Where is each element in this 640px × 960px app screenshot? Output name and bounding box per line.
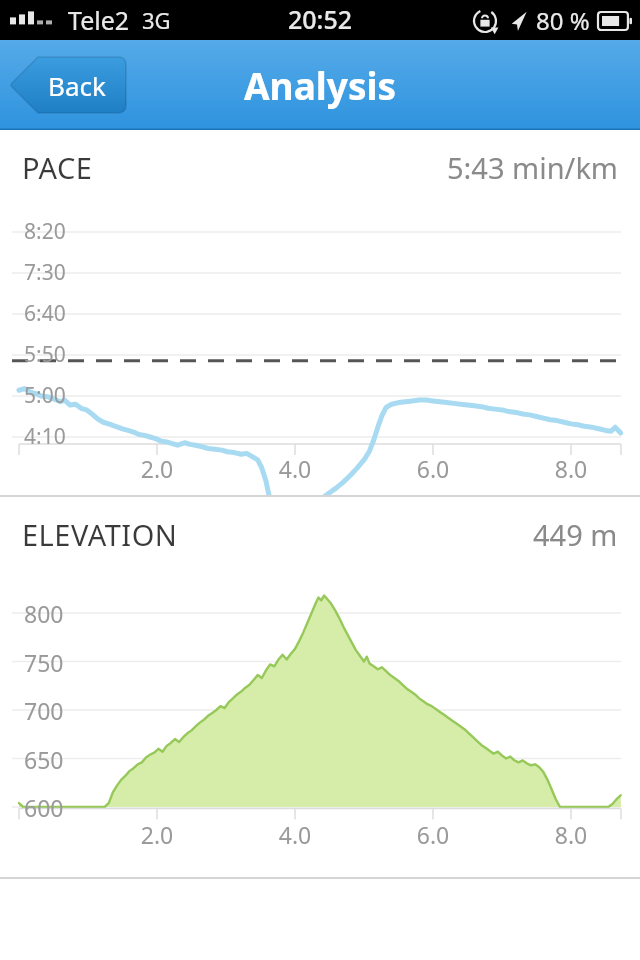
staticText: 3G	[142, 5, 171, 35]
staticText: 20:52	[288, 2, 353, 36]
staticText: ELEVATION	[22, 515, 178, 554]
staticText: 750	[24, 647, 64, 678]
staticText: 6:40	[24, 299, 66, 328]
staticText: 600	[24, 792, 64, 823]
staticText: 7:30	[24, 258, 66, 287]
staticText: 5:43 min/km	[447, 148, 618, 187]
staticText: 700	[24, 695, 64, 726]
staticText: 800	[24, 598, 64, 629]
staticText: 4.0	[265, 819, 325, 850]
staticText: Analysis	[244, 60, 397, 110]
staticText: 4:10	[24, 422, 66, 451]
staticText: 6.0	[403, 453, 463, 484]
staticText: 2.0	[127, 819, 187, 850]
staticText: PACE	[22, 148, 93, 187]
staticText: 2.0	[127, 453, 187, 484]
button[interactable]: Back	[10, 57, 126, 113]
staticText: 5:50	[24, 340, 66, 369]
staticText: 4.0	[265, 453, 325, 484]
staticText: Back	[48, 68, 106, 103]
staticText: 8.0	[541, 819, 601, 850]
staticText: 8.0	[541, 453, 601, 484]
staticText: 80 %	[536, 4, 590, 37]
staticText: 449 m	[533, 515, 618, 554]
staticText: 8:20	[24, 217, 66, 246]
staticText: 5:00	[24, 381, 66, 410]
staticText: 650	[24, 744, 64, 775]
staticText: Tele2	[68, 3, 130, 37]
staticText: 6.0	[403, 819, 463, 850]
